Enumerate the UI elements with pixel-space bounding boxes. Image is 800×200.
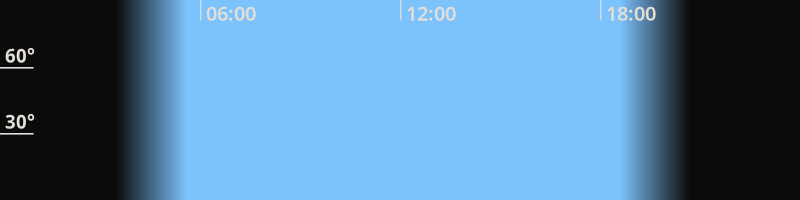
- staticText: 12:00: [406, 0, 456, 26]
- staticText: 30°: [5, 109, 35, 134]
- staticText: 18:00: [606, 0, 656, 26]
- staticText: 60°: [5, 43, 35, 68]
- staticText: 06:00: [206, 0, 256, 26]
